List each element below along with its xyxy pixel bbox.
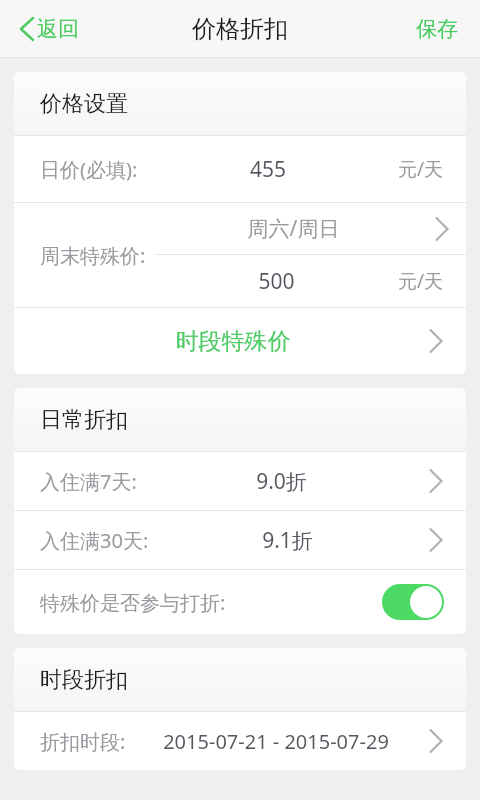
button[interactable]: 特殊价是否参与打折: (14, 570, 466, 634)
button[interactable]: 时段特殊价 (14, 308, 466, 374)
staticText: 价格折扣 (192, 14, 288, 44)
button[interactable]: 周六/周日 (155, 203, 466, 254)
staticText: 9.1折 (149, 526, 426, 555)
button[interactable]: 500 (155, 255, 466, 307)
staticText: 9.0折 (137, 467, 426, 496)
button[interactable]: 日价(必填): (14, 136, 466, 202)
staticText: 时段特殊价 (40, 327, 426, 356)
staticText: 返回 (37, 16, 79, 42)
staticText: 价格设置 (40, 90, 128, 118)
staticText: 时段折扣 (40, 666, 128, 694)
staticText: 入住满7天: (40, 468, 137, 495)
staticText: 折扣时段: (40, 728, 126, 755)
button[interactable]: 入住满30天: (14, 511, 466, 569)
staticText: 500 (155, 267, 398, 296)
staticText: 日价(必填): (40, 156, 138, 183)
staticText: 周六/周日 (155, 214, 432, 243)
staticText: 特殊价是否参与打折: (40, 589, 226, 616)
staticText: 保存 (416, 16, 458, 42)
staticText: 入住满30天: (40, 527, 149, 554)
button[interactable]: 返回 (0, 8, 93, 50)
staticText: 455 (138, 155, 398, 184)
button[interactable]: 入住满7天: (14, 452, 466, 510)
staticText: 2015-07-21 - 2015-07-29 (126, 728, 426, 755)
staticText: 日常折扣 (40, 406, 128, 434)
button[interactable]: Toggle special price discount (382, 584, 444, 620)
staticText: 元/天 (398, 156, 444, 182)
button[interactable]: 保存 (396, 6, 480, 52)
button[interactable]: 折扣时段: (14, 712, 466, 770)
staticText: 元/天 (398, 268, 444, 294)
staticText: 周末特殊价: (40, 242, 146, 269)
